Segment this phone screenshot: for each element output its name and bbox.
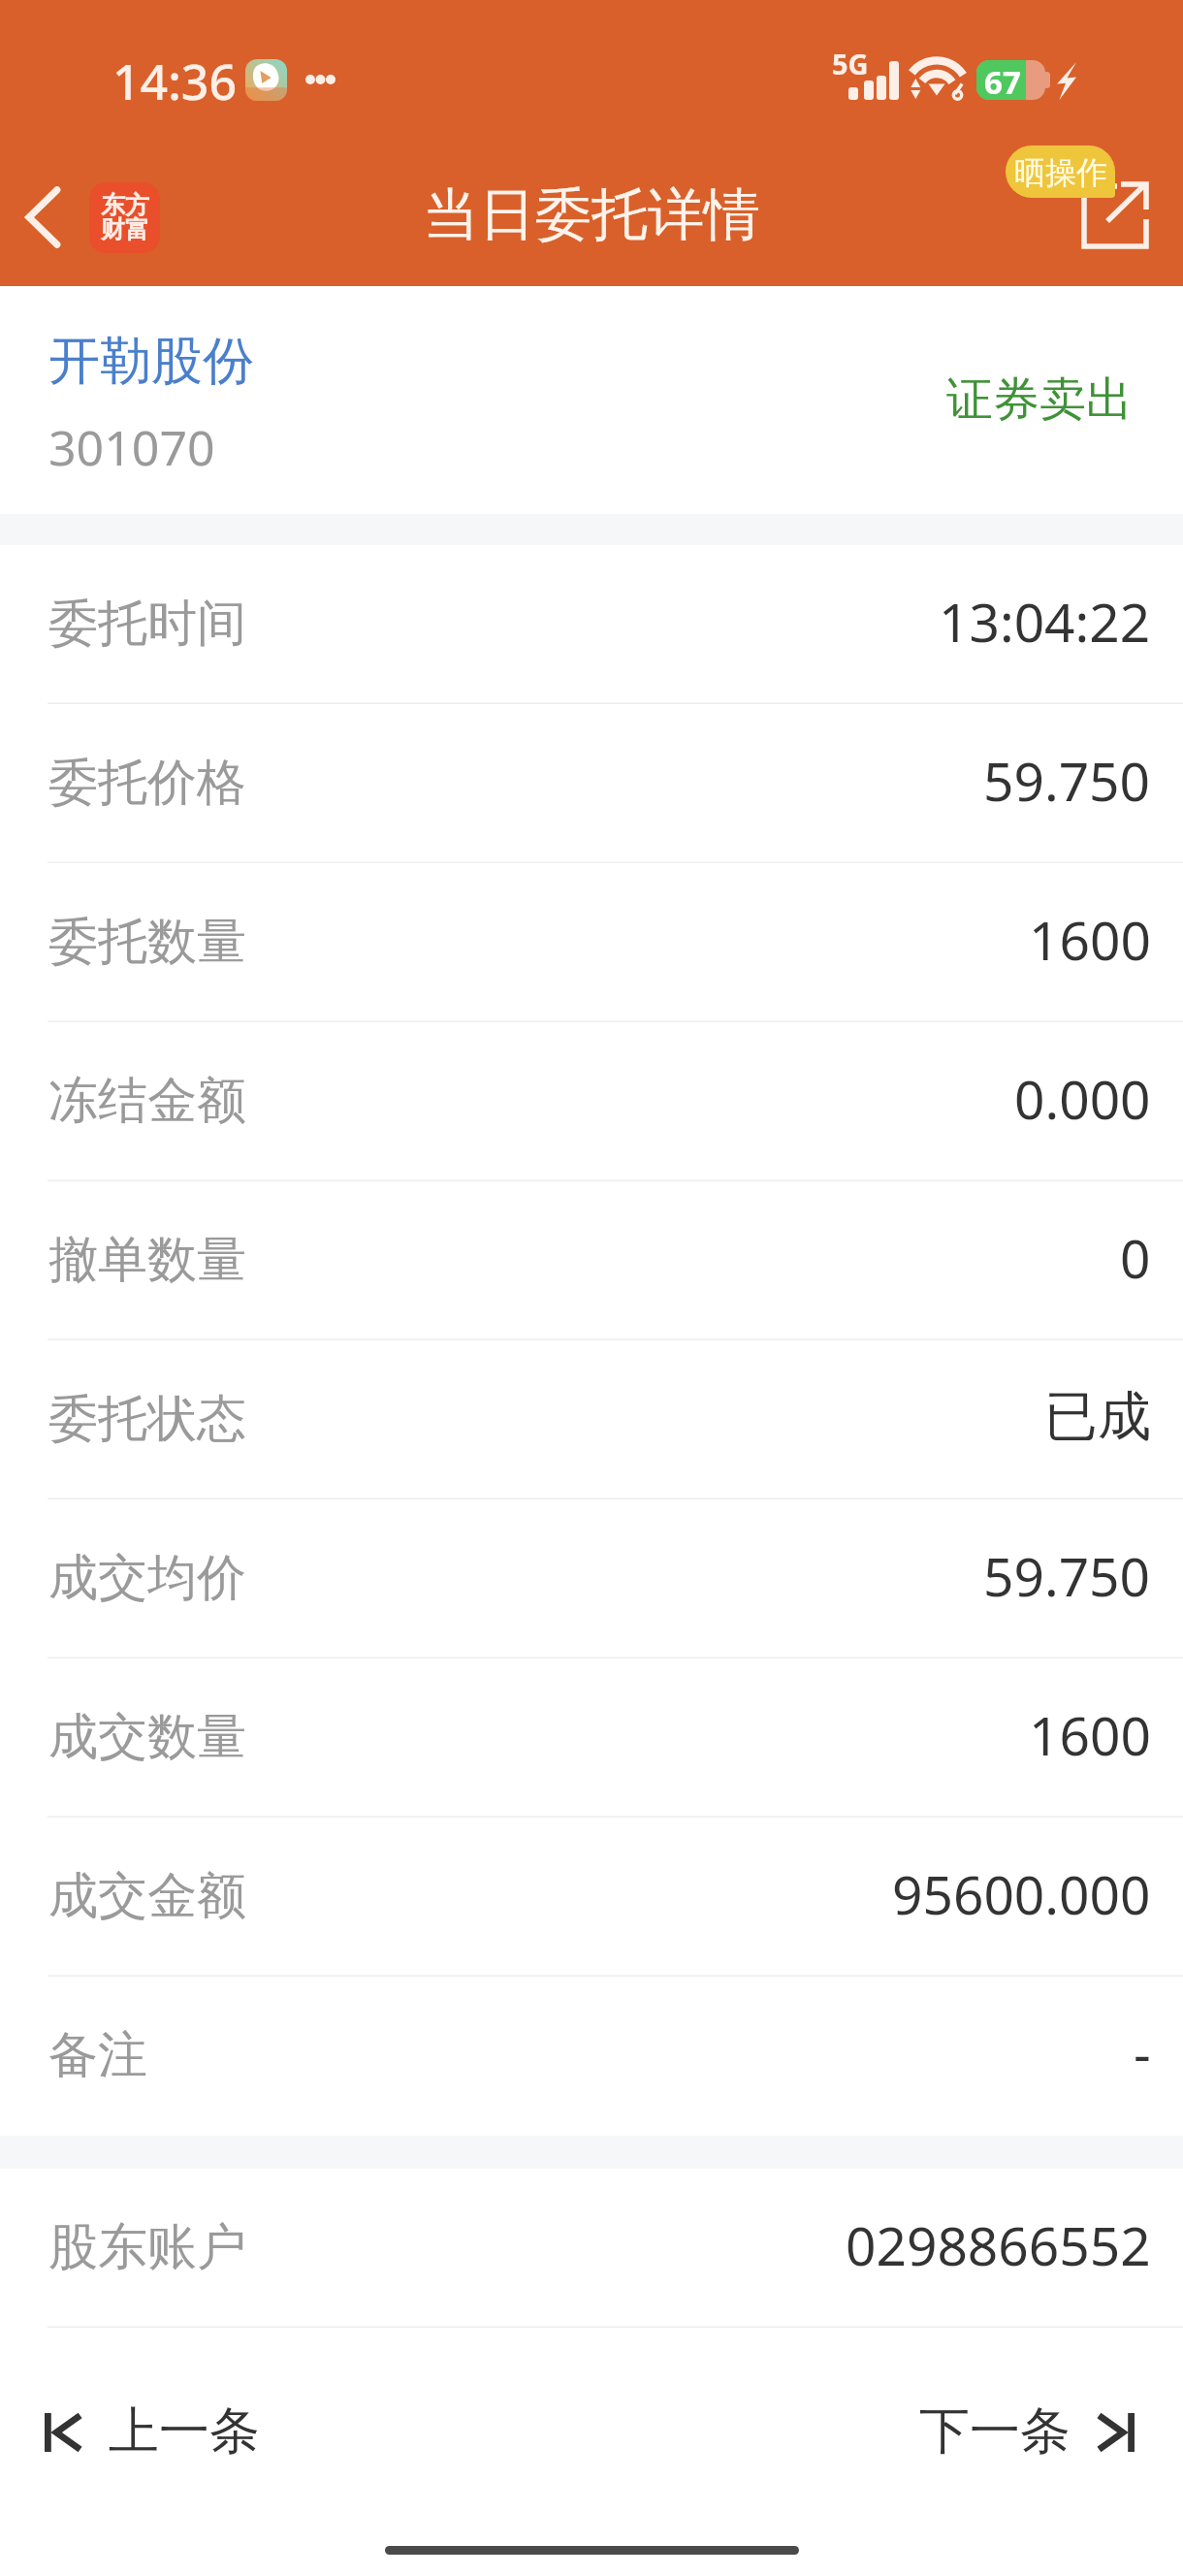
staticText: 5G: [832, 45, 869, 82]
staticText: 东方: [101, 190, 149, 220]
staticText: 成交均价: [48, 1547, 246, 1609]
staticText: 冻结金额: [48, 1070, 246, 1132]
button[interactable]: Share: [1071, 170, 1159, 257]
staticText: 委托价格: [48, 752, 246, 814]
button[interactable]: 冻结金额: [0, 1022, 1183, 1181]
staticText: 撤单数量: [48, 1229, 246, 1291]
staticText: 股东账户: [48, 2216, 246, 2278]
button[interactable]: 委托价格: [0, 704, 1183, 863]
button[interactable]: 上一条: [45, 2400, 260, 2464]
staticText: 晒操作: [1014, 153, 1107, 192]
button[interactable]: 成交金额: [0, 1818, 1183, 1977]
staticText: 委托时间: [48, 593, 246, 655]
button[interactable]: 成交均价: [0, 1499, 1183, 1658]
staticText: 开勒股份: [48, 329, 254, 394]
staticText: 1600: [1029, 903, 1151, 976]
staticText: 成交金额: [48, 1865, 246, 1927]
staticText: 当日委托详情: [423, 179, 760, 250]
button[interactable]: 委托状态: [0, 1340, 1183, 1499]
button[interactable]: 开勒股份: [0, 286, 1183, 514]
button[interactable]: 备注: [0, 1977, 1183, 2136]
staticText: 上一条: [109, 2399, 260, 2463]
staticText: 成交数量: [48, 1706, 246, 1768]
staticText: 13:04:22: [939, 585, 1151, 658]
staticText: 0: [1120, 1221, 1151, 1294]
staticText: 财富: [101, 214, 149, 244]
button[interactable]: 股东账户: [0, 2169, 1183, 2328]
staticText: -: [1134, 2016, 1151, 2089]
staticText: 委托状态: [48, 1388, 246, 1450]
staticText: 67: [984, 60, 1021, 100]
staticText: 14:36: [112, 48, 237, 114]
staticText: 0298866552: [846, 2208, 1151, 2281]
staticText: 备注: [48, 2024, 147, 2086]
staticText: 委托数量: [48, 911, 246, 973]
staticText: 59.750: [983, 1539, 1151, 1612]
button[interactable]: 撤单数量: [0, 1181, 1183, 1340]
staticText: 1600: [1029, 1698, 1151, 1771]
button[interactable]: 委托数量: [0, 863, 1183, 1022]
staticText: 95600.000: [892, 1857, 1151, 1930]
button[interactable]: Back: [5, 177, 84, 257]
button[interactable]: 下一条: [919, 2400, 1135, 2464]
staticText: 已成: [1044, 1383, 1151, 1450]
staticText: 证券卖出: [946, 370, 1133, 429]
staticText: 0.000: [1014, 1062, 1151, 1135]
button[interactable]: 成交数量: [0, 1658, 1183, 1818]
button[interactable]: 委托时间: [0, 545, 1183, 704]
staticText: 下一条: [919, 2399, 1071, 2463]
staticText: 59.750: [983, 744, 1151, 817]
staticText: 301070: [48, 414, 215, 480]
